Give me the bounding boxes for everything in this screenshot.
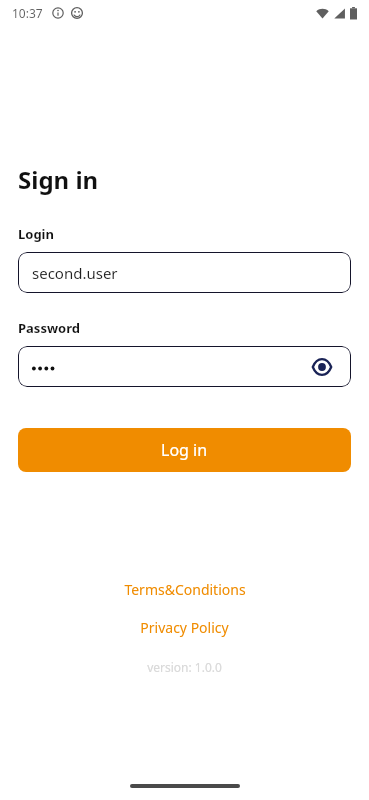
staticText: Log in: [161, 439, 208, 461]
staticText: Password: [18, 319, 80, 337]
staticText: Privacy Policy: [140, 618, 229, 637]
staticText: Sign in: [18, 163, 99, 196]
staticText: version: 1.0.0: [147, 659, 222, 675]
button[interactable]: Show password: [307, 352, 337, 382]
button[interactable]: Terms&Conditions: [116, 578, 254, 601]
staticText: Terms&Conditions: [124, 580, 246, 599]
button[interactable]: Privacy Policy: [132, 616, 237, 639]
staticText: Login: [18, 225, 54, 243]
button[interactable]: second.user: [18, 252, 351, 293]
staticText: second.user: [32, 263, 118, 283]
button[interactable]: Log in: [18, 428, 351, 472]
button[interactable]: Show password: [18, 346, 351, 387]
staticText: 10:37: [12, 5, 43, 21]
